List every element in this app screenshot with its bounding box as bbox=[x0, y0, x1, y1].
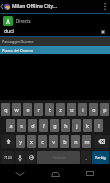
button[interactable]: z bbox=[56, 103, 65, 116]
staticText: Piazza del Duomo bbox=[2, 48, 33, 53]
button[interactable]: Clear text bbox=[96, 27, 110, 36]
staticText: c bbox=[41, 138, 44, 145]
button[interactable]: Shift bbox=[1, 135, 15, 148]
button[interactable]: More options bbox=[100, 0, 110, 13]
staticText: n bbox=[74, 138, 78, 145]
staticText: e bbox=[26, 106, 30, 113]
button[interactable]: t bbox=[45, 103, 54, 116]
staticText: r bbox=[37, 106, 40, 113]
staticText: v bbox=[52, 138, 55, 145]
button[interactable]: b bbox=[60, 135, 69, 148]
button[interactable]: o bbox=[89, 103, 98, 116]
staticText: z bbox=[59, 106, 62, 113]
staticText: p bbox=[103, 106, 107, 113]
staticText: Fertig bbox=[95, 155, 106, 160]
staticText: Passaggio Duomo bbox=[2, 39, 34, 44]
staticText: duci bbox=[4, 28, 14, 35]
button[interactable]: i bbox=[78, 103, 87, 116]
staticText: b bbox=[63, 138, 67, 145]
button[interactable]: Voice input bbox=[15, 151, 25, 164]
staticText: f bbox=[43, 122, 45, 129]
staticText: Directs bbox=[16, 18, 31, 24]
button[interactable]: y bbox=[16, 135, 25, 148]
staticText: g bbox=[53, 122, 57, 129]
staticText: h bbox=[64, 122, 68, 129]
button[interactable]: Navigate up bbox=[0, 0, 11, 13]
button[interactable]: Deutsch bbox=[37, 151, 80, 164]
button[interactable]: e bbox=[23, 103, 32, 116]
button[interactable]: r bbox=[34, 103, 43, 116]
button[interactable]: h bbox=[61, 119, 70, 132]
staticText: w bbox=[14, 106, 19, 113]
button[interactable]: s bbox=[17, 119, 26, 132]
staticText: . bbox=[85, 155, 87, 161]
staticText: o bbox=[92, 106, 96, 113]
button[interactable]: m bbox=[82, 135, 91, 148]
staticText: k bbox=[86, 122, 89, 129]
button[interactable]: l bbox=[94, 119, 103, 132]
button[interactable]: Recent apps bbox=[75, 164, 105, 183]
staticText: d bbox=[31, 122, 35, 129]
button[interactable]: Back bbox=[5, 164, 35, 183]
button[interactable]: x bbox=[27, 135, 36, 148]
button[interactable]: Directs bbox=[0, 14, 110, 27]
staticText: u bbox=[70, 106, 74, 113]
staticText: a bbox=[9, 122, 13, 129]
staticText: j bbox=[76, 122, 78, 129]
button[interactable]: c bbox=[38, 135, 47, 148]
button[interactable]: Piazza del Duomo bbox=[0, 46, 110, 54]
button[interactable]: Passaggio Duomo bbox=[0, 37, 110, 46]
button[interactable]: Home bbox=[40, 164, 70, 183]
button[interactable]: . bbox=[81, 151, 91, 164]
staticText: x bbox=[30, 138, 33, 145]
button[interactable]: w bbox=[12, 103, 21, 116]
button[interactable]: Fertig bbox=[92, 151, 109, 164]
button[interactable]: v bbox=[49, 135, 58, 148]
staticText: l bbox=[98, 122, 100, 129]
staticText: Deutsch bbox=[52, 155, 66, 160]
button[interactable]: q bbox=[1, 103, 10, 116]
button[interactable]: a bbox=[6, 119, 15, 132]
staticText: y bbox=[19, 138, 22, 145]
button[interactable]: ?123 bbox=[1, 151, 14, 164]
button[interactable]: u bbox=[67, 103, 76, 116]
staticText: t bbox=[49, 106, 51, 113]
button[interactable]: j bbox=[72, 119, 81, 132]
staticText: Milan Offline City... bbox=[12, 3, 100, 10]
button[interactable]: d bbox=[28, 119, 37, 132]
button[interactable]: n bbox=[71, 135, 80, 148]
button[interactable]: f bbox=[39, 119, 48, 132]
button[interactable]: Settings bbox=[26, 151, 36, 164]
button[interactable]: Backspace bbox=[94, 135, 109, 148]
button[interactable]: k bbox=[83, 119, 92, 132]
button[interactable]: p bbox=[100, 103, 109, 116]
staticText: i bbox=[82, 106, 84, 113]
staticText: s bbox=[20, 122, 23, 129]
staticText: m bbox=[84, 138, 90, 145]
staticText: ?123 bbox=[4, 155, 12, 160]
staticText: q bbox=[4, 106, 8, 113]
button[interactable]: g bbox=[50, 119, 59, 132]
